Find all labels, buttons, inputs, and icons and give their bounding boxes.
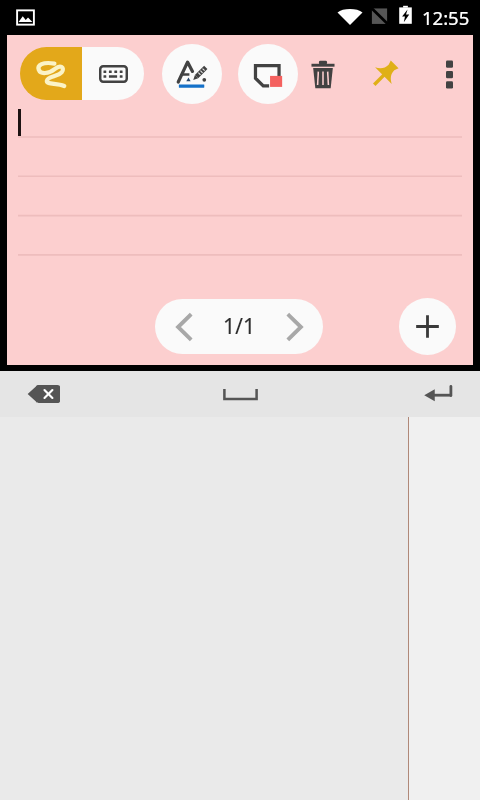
- button[interactable]: Enter: [417, 373, 459, 415]
- staticText: 12:55: [422, 5, 470, 30]
- button[interactable]: Backspace: [22, 373, 64, 415]
- button[interactable]: Delete: [299, 50, 347, 98]
- button[interactable]: Note colour: [238, 44, 298, 104]
- button[interactable]: More options: [425, 50, 473, 98]
- button[interactable]: Keyboard mode: [82, 47, 144, 100]
- button[interactable]: Add page: [399, 298, 456, 355]
- button[interactable]: Pin: [361, 50, 409, 98]
- button[interactable]: Pen style: [162, 44, 222, 104]
- staticText: 1/1: [223, 312, 256, 341]
- button[interactable]: Handwriting mode: [20, 47, 82, 100]
- button[interactable]: Space: [212, 371, 268, 417]
- button[interactable]: 1/1: [155, 299, 323, 354]
